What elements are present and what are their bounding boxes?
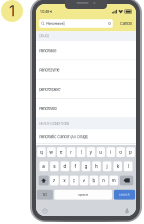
button[interactable]: i [106, 147, 115, 157]
button[interactable]: n [99, 176, 108, 185]
button[interactable]: g [82, 161, 90, 171]
button[interactable]: b [90, 176, 98, 185]
staticText: u [99, 149, 102, 155]
staticText: space [78, 193, 88, 197]
staticText: r [70, 149, 72, 155]
button[interactable]: f [71, 161, 80, 171]
button[interactable]: q [37, 147, 46, 157]
button[interactable]: 123 [37, 190, 53, 200]
button[interactable]: d [61, 161, 69, 171]
staticText: e [60, 149, 63, 155]
staticText: Pancreved [39, 106, 56, 111]
staticText: a [42, 164, 45, 169]
staticText: n [102, 178, 105, 183]
staticText: s [53, 164, 55, 169]
staticText: 123 [42, 193, 47, 197]
button[interactable]: Pancrease [36, 41, 136, 60]
button[interactable]: Pancreved [36, 99, 136, 118]
staticText: g [84, 164, 87, 169]
staticText: 1 [9, 2, 15, 20]
button[interactable]: o [116, 147, 125, 157]
button[interactable]: s [50, 161, 59, 171]
button[interactable]: m [109, 176, 118, 185]
button[interactable]: search [114, 190, 135, 200]
button[interactable]: a [39, 161, 48, 171]
button[interactable]: y [87, 147, 95, 157]
staticText: DRUGS [39, 34, 49, 38]
staticText: c [73, 178, 76, 183]
staticText: Cancel [120, 21, 132, 26]
staticText: z [53, 178, 56, 183]
staticText: l [128, 164, 129, 169]
staticText: b [92, 178, 95, 183]
button[interactable]: e [57, 147, 66, 157]
staticText: v [82, 178, 85, 183]
button[interactable]: u [97, 147, 105, 157]
staticText: o [119, 149, 122, 155]
button[interactable]: pancrelipase [36, 80, 136, 99]
staticText: j [107, 164, 108, 169]
button[interactable]: r [67, 147, 75, 157]
button[interactable]: Cancel [119, 19, 133, 28]
staticText: Pancrease [39, 48, 56, 53]
button[interactable]: Pancreatic Cancer (All Drugs) [36, 129, 136, 144]
button[interactable]: h [92, 161, 101, 171]
button[interactable]: w [47, 147, 56, 157]
button[interactable]: t [77, 147, 85, 157]
button[interactable]: Dictation [122, 207, 131, 214]
staticText: 10:49 [40, 9, 49, 14]
staticText: x [63, 178, 65, 183]
button[interactable]: Shift [39, 176, 49, 185]
staticText: k [117, 164, 119, 169]
button[interactable]: space [54, 190, 112, 200]
button[interactable]: Emoji [40, 207, 49, 214]
staticText: i [110, 149, 111, 155]
button[interactable]: Delete [120, 176, 133, 185]
staticText: pancrelipase [39, 87, 60, 92]
staticText: t [80, 149, 81, 155]
staticText: m [112, 178, 116, 183]
staticText: w [49, 149, 53, 155]
staticText: p [129, 149, 132, 155]
button[interactable]: x [60, 176, 68, 185]
staticText: Pancreatic Cancer (All Drugs) [39, 134, 88, 139]
button[interactable]: k [113, 161, 122, 171]
button[interactable]: v [80, 176, 88, 185]
staticText: f [74, 164, 76, 169]
staticText: search [119, 193, 130, 197]
button[interactable]: z [50, 176, 59, 185]
staticText: q [40, 149, 43, 155]
button[interactable]: l [124, 161, 132, 171]
button[interactable]: p [126, 147, 135, 157]
staticText: y [89, 149, 92, 155]
staticText: d [63, 164, 66, 169]
button[interactable]: c [70, 176, 78, 185]
staticText: Pancrease [46, 21, 63, 26]
staticText: h [95, 164, 98, 169]
staticText: Pancrezyme [39, 68, 59, 72]
button[interactable]: j [103, 161, 111, 171]
staticText: HEALTH CONDITIONS [39, 122, 69, 126]
button[interactable]: Pancrezyme [36, 60, 136, 80]
